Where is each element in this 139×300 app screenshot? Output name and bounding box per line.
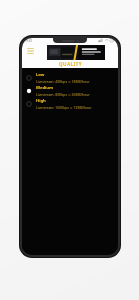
staticText: Livestream: 160Kbps ≈ 72MB/hour <box>36 105 92 110</box>
staticText: QUALITY <box>59 61 82 67</box>
button[interactable]: Low <box>22 71 118 84</box>
button[interactable]: High <box>22 97 118 110</box>
button[interactable] <box>47 45 105 60</box>
staticText: Livestream: 40Kbps ≈ 18MB/hour <box>36 79 90 84</box>
staticText: Medium <box>36 85 54 91</box>
staticText: Livestream: 80Kbps ≈ 36MB/hour <box>36 92 90 97</box>
staticText: Low <box>36 72 45 78</box>
staticText: High <box>36 98 46 104</box>
staticText: 9:41 <box>26 39 33 43</box>
button[interactable]: Open navigation menu <box>25 45 36 56</box>
button[interactable]: Medium <box>22 84 118 97</box>
